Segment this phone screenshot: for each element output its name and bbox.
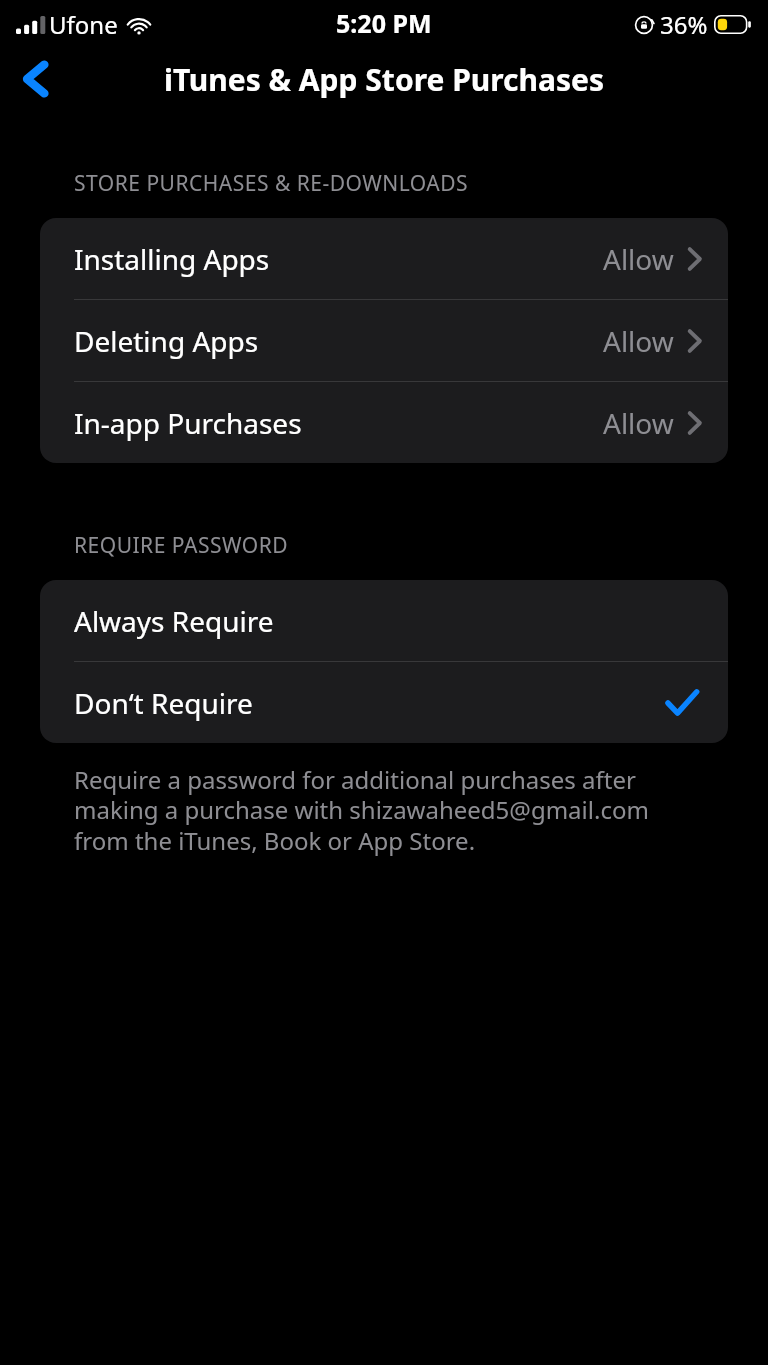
staticText: Always Require — [74, 602, 274, 640]
button[interactable]: Back — [0, 48, 72, 110]
staticText: 5:20 PM — [336, 6, 432, 40]
button[interactable]: Installing Apps — [40, 218, 728, 299]
staticText: 36% — [660, 8, 708, 41]
staticText: iTunes & App Store Purchases — [164, 59, 605, 100]
staticText: In-app Purchases — [74, 404, 302, 442]
staticText: Ufone — [49, 8, 118, 41]
staticText: REQUIRE PASSWORD — [74, 531, 289, 560]
staticText: STORE PURCHASES & RE-DOWNLOADS — [74, 169, 469, 198]
staticText: Require a password for additional purcha… — [74, 763, 704, 857]
staticText: Allow — [603, 322, 674, 360]
button[interactable]: Deleting Apps — [40, 300, 728, 381]
staticText: Allow — [603, 240, 674, 278]
button[interactable]: Don‘t Require — [40, 662, 728, 743]
staticText: Installing Apps — [74, 240, 270, 278]
button[interactable]: In-app Purchases — [40, 382, 728, 463]
staticText: Deleting Apps — [74, 322, 259, 360]
button[interactable]: Always Require — [40, 580, 728, 661]
staticText: Allow — [603, 404, 674, 442]
staticText: Don‘t Require — [74, 684, 253, 722]
